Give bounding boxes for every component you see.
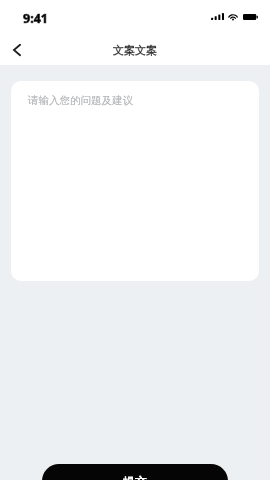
button[interactable]: 提交	[42, 464, 228, 480]
button[interactable]: Back	[1, 34, 32, 65]
staticText: 提交	[123, 474, 147, 480]
staticText: 请输入您的问题及建议	[28, 94, 133, 107]
staticText: 文案文案	[113, 43, 157, 57]
button[interactable]: 请输入您的问题及建议	[11, 81, 259, 281]
staticText: 9:41	[23, 10, 48, 27]
